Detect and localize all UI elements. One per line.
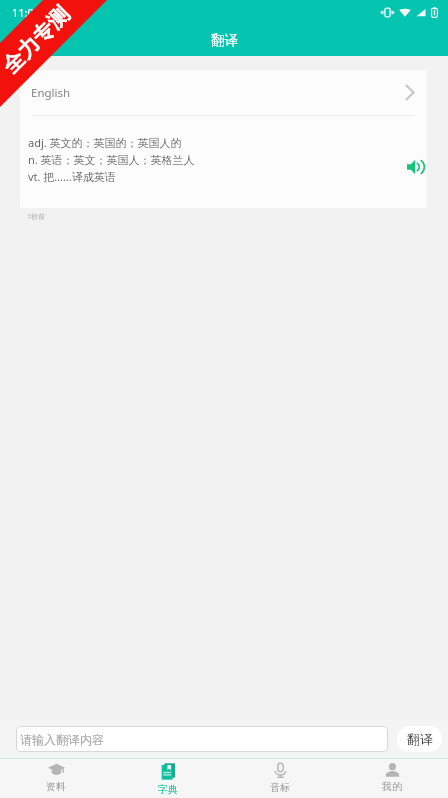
button[interactable]: 音标 [224,759,336,794]
staticText: 11:08 [12,5,41,20]
button[interactable]: 我的 [336,759,448,793]
staticText: vt. 把……译成英语 [28,169,116,184]
button[interactable]: 资料 [0,759,112,793]
staticText: n. 英语；英文；英国人；英格兰人 [28,152,195,167]
button[interactable]: 字典 [112,759,224,796]
staticText: 翻译 [407,731,433,747]
button[interactable]: English [20,70,427,115]
staticText: 我的 [382,780,402,793]
staticText: 资料 [46,780,66,793]
staticText: 字典 [158,783,178,796]
staticText: 音标 [270,781,290,794]
staticText: 翻译 [211,32,238,49]
staticText: adj. 英文的；英国的；英国人的 [28,135,182,150]
button[interactable]: 请输入翻译内容 [16,726,388,752]
staticText: 1秒前 [27,212,46,222]
button[interactable]: Play pronunciation [401,152,427,182]
staticText: 请输入翻译内容 [20,732,104,747]
staticText: 全力专测 [0,1,75,79]
staticText: English [31,85,71,101]
button[interactable]: 翻译 [397,726,442,752]
